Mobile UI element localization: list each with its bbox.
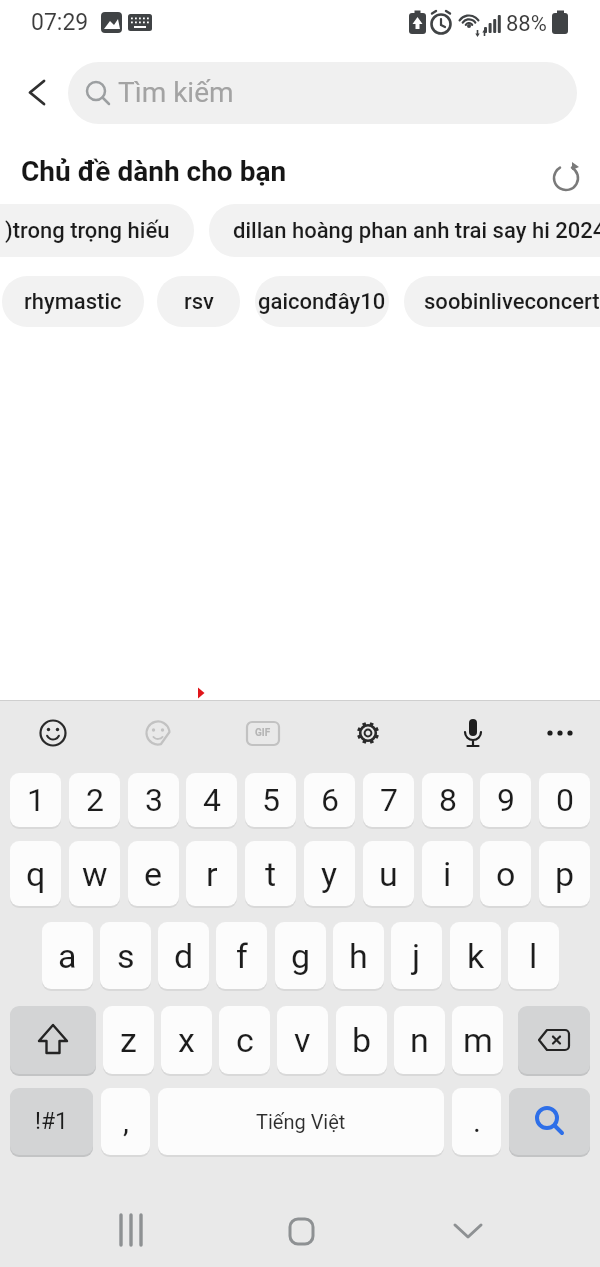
staticText: 88%: [506, 11, 547, 37]
button[interactable]: 6: [304, 773, 355, 827]
staticText: x: [178, 1020, 195, 1060]
staticText: Tìm kiếm: [118, 76, 234, 109]
button[interactable]: [518, 1006, 590, 1074]
button[interactable]: 7: [363, 773, 414, 827]
button[interactable]: m: [452, 1006, 503, 1074]
button[interactable]: [444, 1212, 492, 1252]
staticText: ,: [123, 1104, 129, 1139]
button[interactable]: d: [158, 922, 209, 989]
button[interactable]: 9: [480, 773, 531, 827]
button[interactable]: rhymastic: [2, 276, 144, 327]
staticText: t: [265, 854, 277, 894]
button[interactable]: GIF: [243, 713, 283, 753]
button[interactable]: b: [336, 1006, 387, 1074]
button[interactable]: 2: [69, 773, 120, 827]
staticText: GIF: [255, 727, 271, 739]
staticText: !#1: [35, 1108, 69, 1135]
staticText: 3: [145, 781, 163, 819]
staticText: g: [291, 936, 311, 976]
button[interactable]: [33, 713, 73, 753]
button[interactable]: r: [186, 841, 237, 906]
staticText: e: [144, 854, 163, 894]
button[interactable]: soobinliveconcert: [404, 276, 600, 327]
button[interactable]: [138, 713, 178, 753]
staticText: rhymastic: [24, 289, 122, 315]
button[interactable]: Tìm kiếm: [68, 62, 577, 124]
staticText: o: [496, 854, 516, 894]
button[interactable]: t: [245, 841, 296, 906]
staticText: p: [555, 854, 575, 894]
button[interactable]: 0: [539, 773, 590, 827]
staticText: a: [58, 936, 77, 976]
button[interactable]: g: [275, 922, 326, 989]
staticText: 5: [262, 781, 280, 819]
staticText: 07:29: [31, 9, 89, 36]
button[interactable]: dillan hoàng phan anh trai say hi 2024: [209, 204, 600, 257]
staticText: 9: [497, 781, 515, 819]
button[interactable]: 1: [10, 773, 61, 827]
button[interactable]: k: [450, 922, 501, 989]
button[interactable]: [10, 1006, 96, 1074]
button[interactable]: 3: [128, 773, 179, 827]
button[interactable]: Tiếng Việt: [158, 1088, 444, 1155]
button[interactable]: .: [452, 1088, 501, 1155]
staticText: 2: [86, 781, 104, 819]
button[interactable]: u: [363, 841, 414, 906]
staticText: u: [379, 854, 398, 894]
button[interactable]: [540, 713, 580, 753]
button[interactable]: i: [422, 841, 473, 906]
staticText: k: [467, 936, 485, 976]
staticText: b: [352, 1020, 372, 1060]
staticText: l: [529, 936, 538, 976]
button[interactable]: c: [219, 1006, 270, 1074]
staticText: z: [120, 1020, 137, 1060]
button[interactable]: n: [394, 1006, 445, 1074]
button[interactable]: z: [103, 1006, 154, 1074]
button[interactable]: ,: [101, 1088, 150, 1155]
button[interactable]: f: [216, 922, 267, 989]
button[interactable]: [108, 1212, 158, 1252]
button[interactable]: [548, 160, 584, 196]
staticText: q: [26, 854, 46, 894]
button[interactable]: y: [304, 841, 355, 906]
button[interactable]: x: [161, 1006, 212, 1074]
staticText: 0: [556, 781, 574, 819]
button[interactable]: v: [277, 1006, 328, 1074]
button[interactable]: 5: [245, 773, 296, 827]
button[interactable]: a: [42, 922, 93, 989]
staticText: 4: [203, 781, 221, 819]
button[interactable]: [278, 1212, 324, 1252]
button[interactable]: l: [508, 922, 559, 989]
staticText: r: [206, 854, 218, 894]
staticText: )trong trọng hiếu: [5, 218, 170, 244]
button[interactable]: [453, 713, 493, 753]
button[interactable]: [509, 1088, 590, 1155]
staticText: i: [443, 854, 452, 894]
button[interactable]: h: [333, 922, 384, 989]
staticText: 8: [439, 781, 457, 819]
button[interactable]: gaiconđây10: [255, 276, 389, 327]
button[interactable]: e: [128, 841, 179, 906]
button[interactable]: j: [391, 922, 442, 989]
button[interactable]: p: [539, 841, 590, 906]
staticText: Chủ đề dành cho bạn: [21, 155, 287, 188]
staticText: h: [349, 936, 368, 976]
button[interactable]: o: [480, 841, 531, 906]
staticText: y: [321, 854, 338, 894]
button[interactable]: )trong trọng hiếu: [0, 204, 194, 257]
button[interactable]: 4: [186, 773, 237, 827]
button[interactable]: rsv: [157, 276, 240, 327]
button[interactable]: q: [10, 841, 61, 906]
button[interactable]: w: [69, 841, 120, 906]
staticText: Tiếng Việt: [256, 1110, 346, 1133]
button[interactable]: [18, 74, 58, 114]
button[interactable]: s: [100, 922, 151, 989]
staticText: d: [174, 936, 194, 976]
button[interactable]: [348, 713, 388, 753]
staticText: 7: [380, 781, 398, 819]
staticText: v: [294, 1020, 311, 1060]
button[interactable]: !#1: [10, 1088, 93, 1155]
staticText: .: [473, 1104, 481, 1139]
staticText: j: [412, 936, 421, 976]
button[interactable]: 8: [422, 773, 473, 827]
